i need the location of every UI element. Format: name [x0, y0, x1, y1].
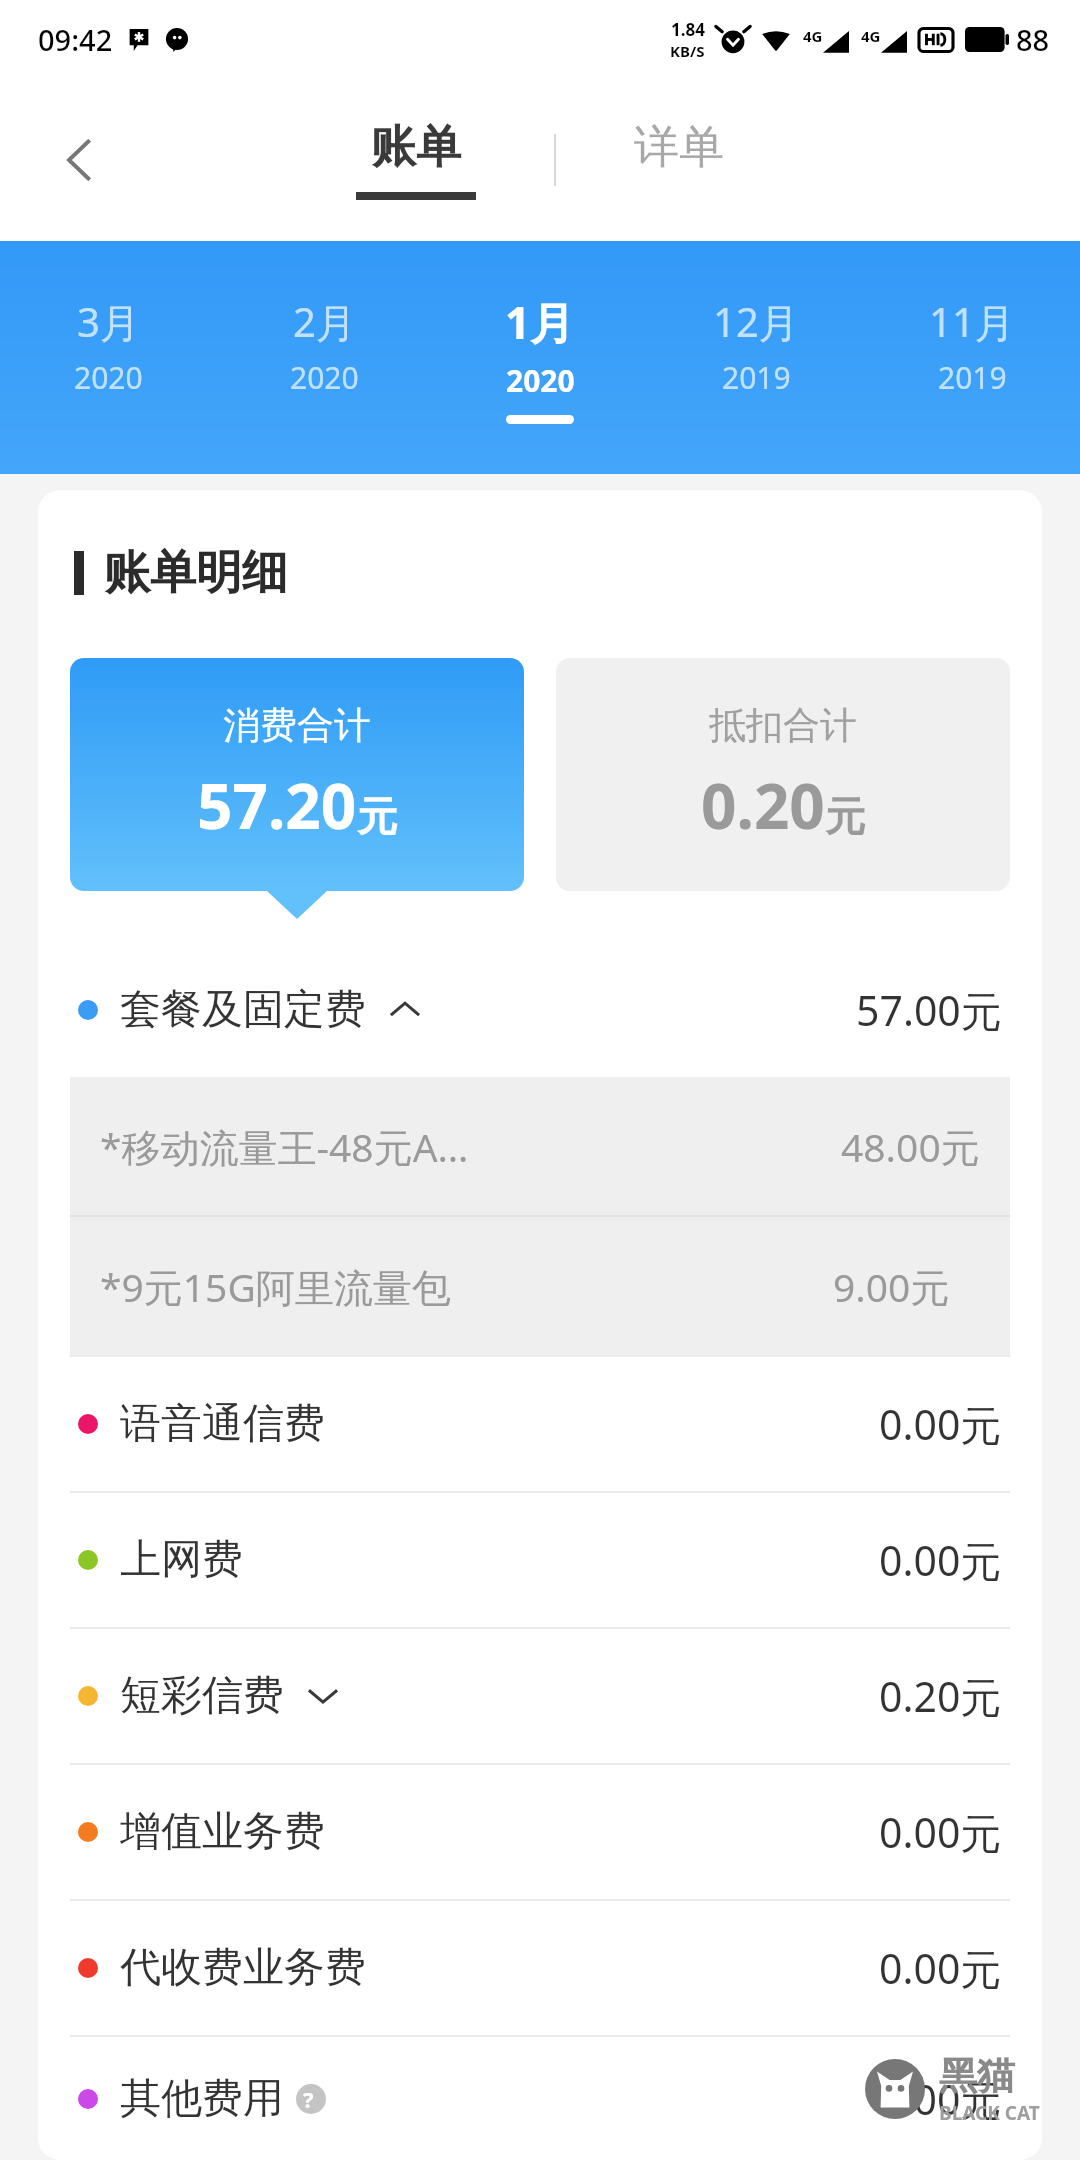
staticText: 0.20元 — [879, 1668, 1002, 1724]
staticText: BLACK CAT — [939, 2100, 1040, 2126]
staticText: 消费合计 — [223, 702, 371, 749]
button[interactable]: 11月 — [864, 241, 1080, 474]
button[interactable]: *移动流量王-48元A套餐2017… — [70, 1077, 1010, 1215]
staticText: 上网费 — [120, 1534, 243, 1586]
button[interactable]: 代收费业务费 — [38, 1901, 1042, 2035]
staticText: 详单 — [634, 119, 724, 176]
staticText: 48.00元 — [841, 1120, 980, 1173]
staticText: 1.84 — [671, 18, 705, 41]
staticText: *移动流量王-48元A套餐2017… — [100, 1120, 470, 1173]
button[interactable]: 12月 — [648, 241, 864, 474]
staticText: 12月 — [713, 294, 799, 349]
staticText: *9元15G阿里流量包 — [100, 1260, 451, 1313]
button[interactable]: 短彩信费 — [38, 1629, 1042, 1763]
button[interactable]: 3月 — [0, 241, 216, 474]
button[interactable]: 抵扣合计 — [556, 658, 1010, 891]
staticText: 3月 — [77, 294, 140, 349]
staticText: 1月 — [505, 292, 575, 352]
staticText: 57.00元 — [856, 982, 1002, 1038]
staticText: 2020 — [290, 357, 359, 398]
staticText: 账单明细 — [104, 544, 288, 602]
button[interactable]: 2月 — [216, 241, 432, 474]
staticText: 0.00元 — [879, 1396, 1002, 1452]
staticText: 抵扣合计 — [709, 702, 857, 749]
staticText: 88 — [1016, 20, 1050, 59]
button[interactable]: 消费合计 — [70, 658, 524, 891]
staticText: 2019 — [722, 357, 791, 398]
staticText: 代收费业务费 — [120, 1942, 366, 1994]
staticText: ? — [303, 2084, 314, 2114]
staticText: 0.00元 — [879, 1804, 1002, 1860]
staticText: 2020 — [74, 357, 143, 398]
staticText: 0.00元 — [879, 2071, 1002, 2127]
staticText: 套餐及固定费 — [120, 984, 366, 1036]
button[interactable]: 1月 — [432, 241, 648, 474]
staticText: 11月 — [929, 294, 1015, 349]
staticText: 0.00元 — [879, 1940, 1002, 1996]
staticText: 语音通信费 — [120, 1398, 325, 1450]
button[interactable]: 详单 — [608, 119, 750, 200]
staticText: 2020 — [506, 360, 575, 401]
staticText: 09:42 — [38, 20, 113, 59]
button[interactable]: *9元15G阿里流量包 — [70, 1217, 1010, 1355]
staticText: 元 — [825, 791, 865, 841]
button[interactable]: 增值业务费 — [38, 1765, 1042, 1899]
staticText: 其他费用 — [120, 2073, 284, 2125]
staticText: KB/S — [670, 41, 705, 61]
button[interactable]: 上网费 — [38, 1493, 1042, 1627]
staticText: 2月 — [293, 294, 356, 349]
staticText: 增值业务费 — [120, 1806, 325, 1858]
staticText: 账单 — [371, 119, 461, 176]
button[interactable]: 语音通信费 — [38, 1357, 1042, 1491]
button[interactable]: Back — [40, 120, 120, 200]
staticText: 2019 — [938, 357, 1007, 398]
staticText: 4G — [803, 26, 823, 46]
staticText: 9.00元 — [833, 1260, 950, 1313]
staticText: 黑猫 — [939, 2052, 1015, 2100]
button[interactable]: 其他费用 — [38, 2037, 1042, 2160]
staticText: 57.20 — [197, 763, 357, 847]
button[interactable]: 账单 — [330, 119, 502, 200]
staticText: 0.20 — [701, 763, 825, 847]
button[interactable]: 套餐及固定费 — [38, 943, 1042, 1077]
staticText: 4G — [861, 26, 881, 46]
staticText: 0.00元 — [879, 1532, 1002, 1588]
staticText: 元 — [357, 791, 397, 841]
staticText: 短彩信费 — [120, 1670, 284, 1722]
